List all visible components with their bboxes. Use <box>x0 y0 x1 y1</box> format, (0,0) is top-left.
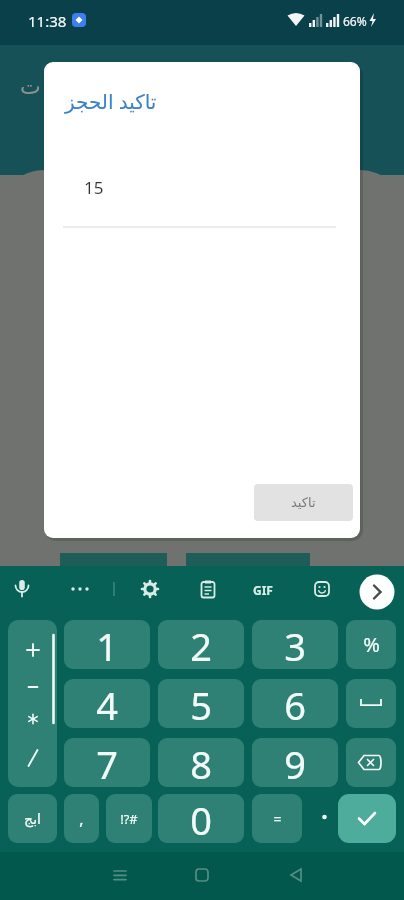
button[interactable]: 8 <box>158 738 244 787</box>
staticText: = <box>273 809 282 828</box>
staticText: % <box>363 631 380 658</box>
staticText: 3 <box>284 620 306 669</box>
staticText: 15 <box>84 176 104 199</box>
staticText: 9 <box>284 738 306 787</box>
staticText: !?# <box>120 810 138 828</box>
staticText: 5 <box>190 679 212 728</box>
staticText: 66% <box>343 13 367 29</box>
staticText: ت <box>20 74 41 100</box>
button[interactable]: 2 <box>158 620 244 669</box>
staticText: ابج <box>24 811 41 827</box>
button[interactable]: ابج <box>8 794 57 843</box>
button[interactable]: 7 <box>64 738 150 787</box>
button[interactable]: = <box>252 794 302 843</box>
button[interactable]: 9 <box>252 738 338 787</box>
staticText: 6 <box>284 679 306 728</box>
button[interactable] <box>0 566 404 620</box>
staticText: 1 <box>96 620 118 669</box>
button[interactable]: !?# <box>106 794 152 843</box>
staticText: , <box>79 808 84 830</box>
button[interactable]: , <box>64 794 99 843</box>
button[interactable]: 3 <box>252 620 338 669</box>
button[interactable] <box>338 794 396 843</box>
staticText: تاكيد <box>291 495 316 510</box>
staticText: 7 <box>96 738 118 787</box>
staticText: 0 <box>190 794 212 843</box>
staticText: 4 <box>96 679 118 728</box>
button[interactable] <box>8 620 57 787</box>
button[interactable]: 6 <box>252 679 338 728</box>
button[interactable]: % <box>346 620 396 669</box>
staticText: 11:38 <box>28 11 67 31</box>
button[interactable]: 1 <box>64 620 150 669</box>
button[interactable] <box>346 679 396 728</box>
button[interactable] <box>310 794 334 843</box>
staticText: 2 <box>190 620 212 669</box>
button[interactable]: 0 <box>158 794 244 843</box>
button[interactable]: GIF <box>253 582 273 598</box>
button[interactable]: 4 <box>64 679 150 728</box>
button[interactable] <box>346 738 396 787</box>
staticText: 8 <box>190 738 212 787</box>
staticText: تاكيد الحجز <box>65 88 157 115</box>
button[interactable]: تاكيد <box>254 484 353 521</box>
button[interactable]: 5 <box>158 679 244 728</box>
